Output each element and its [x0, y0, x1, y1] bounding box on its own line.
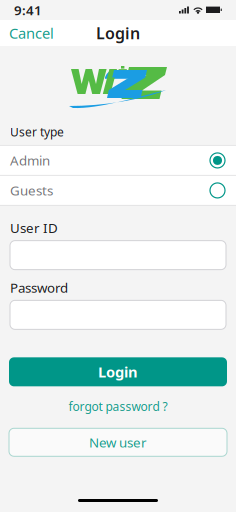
staticText: Login: [96, 22, 140, 44]
button[interactable]: Guests: [0, 176, 236, 205]
button[interactable]: Cancel: [0, 20, 63, 46]
button[interactable]: New user: [9, 428, 227, 456]
staticText: Password: [10, 279, 68, 296]
staticText: New user: [89, 433, 147, 451]
staticText: forgot password ?: [68, 398, 167, 414]
staticText: Admin: [10, 152, 50, 169]
button[interactable]: Admin: [0, 146, 236, 175]
staticText: User type: [10, 124, 64, 140]
staticText: User ID: [10, 219, 58, 237]
button[interactable]: forgot password ?: [68, 393, 167, 419]
staticText: 9:41: [14, 1, 42, 19]
staticText: Cancel: [9, 23, 54, 43]
staticText: Login: [98, 362, 138, 382]
staticText: Guests: [10, 182, 53, 199]
button[interactable]: Login: [9, 357, 227, 386]
